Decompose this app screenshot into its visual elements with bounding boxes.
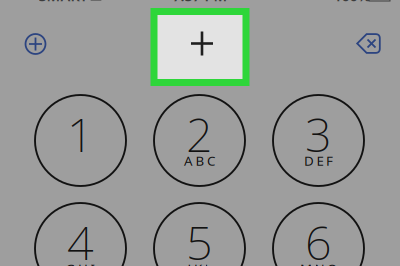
staticText: 5: [186, 211, 213, 266]
staticText: 7:57 PM: [172, 0, 227, 5]
button[interactable]: 6: [273, 203, 364, 266]
staticText: SMART: [38, 0, 87, 5]
staticText: 2: [186, 103, 213, 165]
staticText: I: [90, 260, 95, 266]
staticText: G: [65, 260, 75, 266]
button[interactable]: 2: [154, 95, 245, 186]
staticText: H: [78, 260, 88, 266]
staticText: C: [207, 152, 215, 169]
staticText: D: [304, 152, 314, 169]
staticText: 100%: [333, 0, 370, 5]
button[interactable]: 1: [35, 95, 126, 186]
staticText: 6: [305, 211, 332, 266]
staticText: F: [326, 152, 333, 169]
staticText: B: [195, 152, 204, 169]
staticText: O: [327, 260, 337, 266]
staticText: L: [204, 260, 211, 266]
staticText: N: [314, 260, 324, 266]
staticText: M: [300, 260, 312, 266]
button[interactable]: 4: [35, 203, 126, 266]
button[interactable]: Add number: [12, 21, 58, 67]
staticText: A: [184, 152, 193, 169]
staticText: K: [194, 260, 202, 266]
button[interactable]: 5: [154, 203, 245, 266]
button[interactable]: Delete: [345, 20, 391, 66]
staticText: 4: [67, 211, 94, 266]
staticText: J: [187, 260, 191, 266]
button[interactable]: 3: [273, 95, 364, 186]
staticText: 1: [67, 103, 94, 165]
staticText: E: [316, 152, 323, 169]
staticText: 3: [305, 103, 332, 165]
